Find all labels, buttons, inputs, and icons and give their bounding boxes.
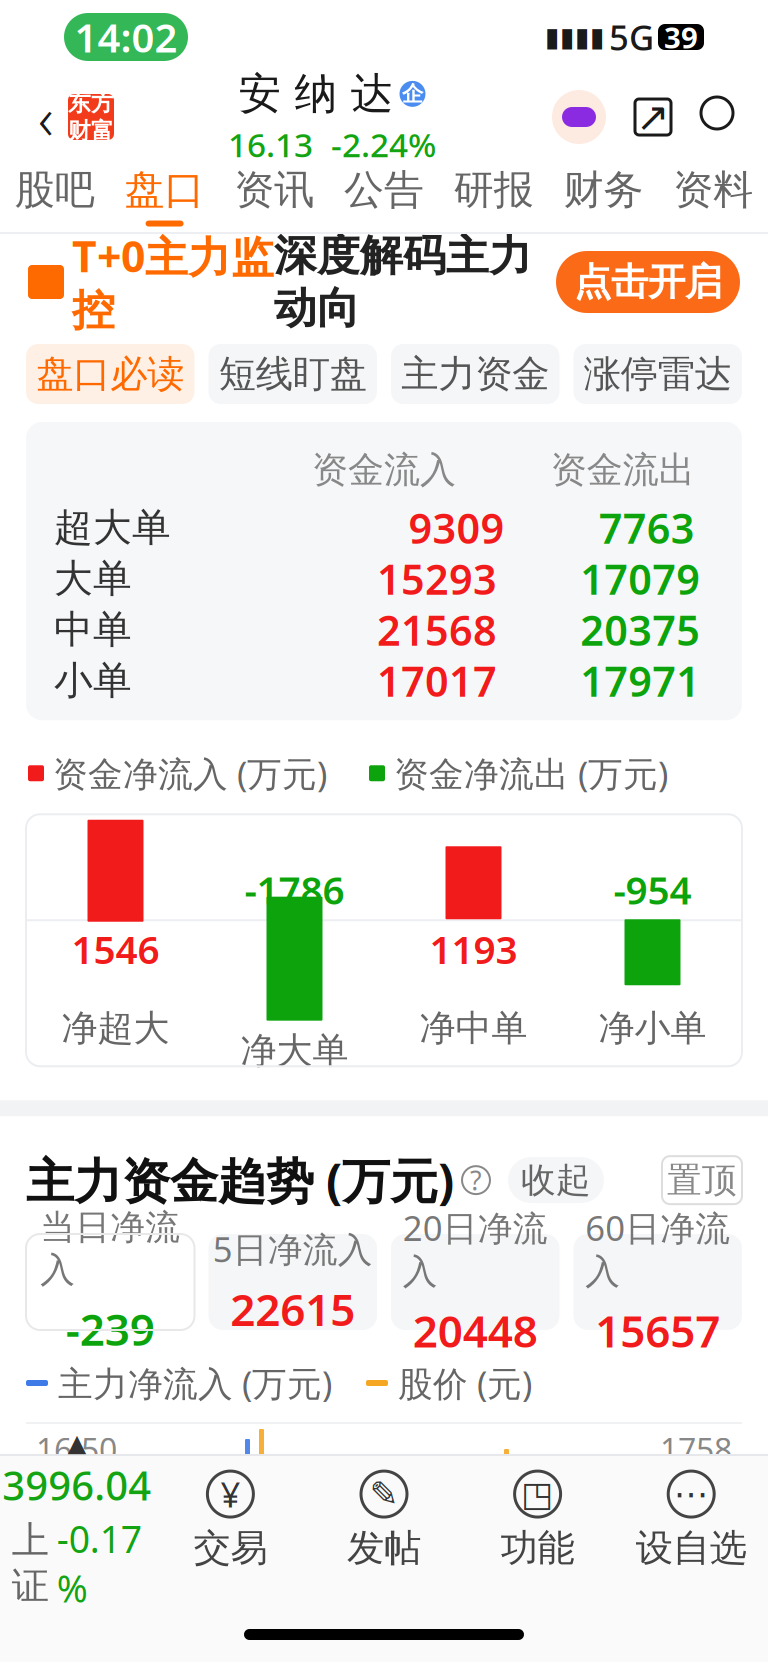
- staticText: ▲: [68, 1429, 86, 1456]
- staticText: 交易: [193, 1525, 267, 1571]
- staticText: 资讯: [234, 165, 314, 214]
- button[interactable]: ⋯: [614, 1471, 768, 1571]
- staticText: 小单: [54, 657, 132, 704]
- staticText: 资金流出: [551, 448, 695, 492]
- staticText: 收起: [521, 1159, 591, 1201]
- staticText: 17079: [580, 551, 700, 606]
- staticText: 东方: [68, 89, 114, 117]
- staticText: T+0主力监控: [72, 227, 274, 337]
- button[interactable]: 📈: [0, 234, 768, 330]
- staticText: 7763: [599, 500, 695, 555]
- staticText: ↗: [636, 94, 670, 140]
- button[interactable]: AI Assistant: [550, 88, 608, 146]
- button[interactable]: Back: [24, 87, 68, 147]
- staticText: 20448: [413, 1301, 538, 1359]
- staticText: 短线盯盘: [219, 351, 367, 397]
- staticText: 净超大: [61, 1006, 169, 1050]
- staticText: 净中单: [419, 1006, 527, 1050]
- staticText: 点击开启: [574, 259, 722, 305]
- staticText: 1758: [660, 1428, 732, 1470]
- staticText: 资金流入: [312, 448, 456, 492]
- staticText: 主力净流入 (万元): [58, 1360, 332, 1406]
- button[interactable]: 短线盯盘: [208, 344, 377, 404]
- staticText: 3996.04: [2, 1458, 151, 1512]
- button[interactable]: 资讯: [219, 160, 329, 232]
- staticText: ⋯: [674, 1474, 709, 1514]
- staticText: 17971: [580, 653, 700, 708]
- button[interactable]: ✎: [307, 1471, 461, 1571]
- staticText: 设自选: [636, 1525, 747, 1571]
- staticText: 14:02: [74, 10, 177, 63]
- button[interactable]: 5日净流入: [208, 1234, 377, 1330]
- staticText: 20375: [580, 602, 700, 657]
- staticText: 盘口必读: [36, 351, 184, 397]
- staticText: 资金净流入 (万元): [53, 750, 327, 796]
- staticText: -0.17%: [57, 1514, 142, 1613]
- staticText: 9309: [408, 500, 504, 555]
- button[interactable]: 当日净流入: [26, 1234, 194, 1330]
- button[interactable]: 财务: [549, 160, 658, 232]
- staticText: 1159: [660, 1483, 732, 1525]
- staticText: 16.13 -2.24%: [228, 122, 436, 166]
- staticText: 39: [664, 17, 698, 56]
- staticText: 15293: [377, 551, 497, 606]
- staticText: 财务: [563, 165, 643, 214]
- button[interactable]: 盘口必读: [26, 344, 194, 404]
- button[interactable]: East Money: [68, 94, 114, 140]
- staticText: 主力资金趋势 (万元): [26, 1148, 454, 1212]
- button[interactable]: Share: [630, 94, 676, 140]
- button[interactable]: 20日净流入: [391, 1234, 559, 1330]
- button[interactable]: ¥: [154, 1471, 307, 1571]
- staticText: 盘口: [125, 165, 205, 214]
- staticText: 涨停雷达: [584, 351, 732, 397]
- staticText: 净小单: [598, 1006, 706, 1050]
- staticText: 深度解码主力动向: [274, 230, 532, 334]
- staticText: 5日净流入: [213, 1226, 373, 1272]
- staticText: ‹: [38, 78, 54, 156]
- staticText: 资金净流出 (万元): [394, 750, 668, 796]
- staticText: 20日净流入: [403, 1204, 548, 1293]
- staticText: 15657: [595, 1301, 720, 1359]
- staticText: 上证: [12, 1517, 49, 1609]
- button[interactable]: ◳: [461, 1471, 614, 1571]
- button[interactable]: 主力资金: [391, 344, 559, 404]
- staticText: 16.50: [36, 1428, 117, 1470]
- button[interactable]: 股吧: [0, 160, 110, 232]
- staticText: 超大单: [54, 504, 171, 551]
- button[interactable]: 收起: [508, 1157, 604, 1203]
- staticText: 功能: [501, 1525, 575, 1571]
- staticText: 5G: [609, 14, 654, 60]
- staticText: 股吧: [15, 165, 95, 214]
- staticText: -1786: [244, 864, 344, 915]
- button[interactable]: 公告: [329, 160, 439, 232]
- button[interactable]: 资料: [658, 160, 768, 232]
- button[interactable]: 涨停雷达: [573, 344, 742, 404]
- staticText: -954: [613, 864, 691, 915]
- staticText: 21568: [377, 602, 497, 657]
- staticText: ¥: [220, 1471, 240, 1517]
- button[interactable]: 盘口: [110, 160, 219, 232]
- staticText: 17017: [377, 653, 497, 708]
- button[interactable]: ▲: [0, 1429, 154, 1613]
- staticText: 置顶: [667, 1159, 737, 1201]
- staticText: 1193: [429, 923, 517, 975]
- button[interactable]: 置顶: [662, 1156, 742, 1204]
- staticText: 股价 (元): [398, 1360, 532, 1406]
- button[interactable]: Search: [698, 94, 744, 140]
- staticText: ✎: [369, 1474, 398, 1514]
- staticText: 净大单: [240, 1029, 348, 1073]
- staticText: 大单: [54, 555, 132, 602]
- staticText: -239: [66, 1299, 155, 1358]
- staticText: 财富: [68, 117, 114, 145]
- staticText: 22615: [230, 1280, 355, 1338]
- staticText: 发帖: [347, 1525, 421, 1571]
- staticText: 560: [678, 1537, 732, 1580]
- staticText: 1546: [71, 923, 159, 975]
- staticText: ◳: [521, 1474, 554, 1514]
- staticText: 16.21: [36, 1483, 117, 1525]
- staticText: 中单: [54, 606, 132, 653]
- staticText: 60日净流入: [585, 1204, 730, 1293]
- button[interactable]: 60日净流入: [573, 1234, 742, 1330]
- button[interactable]: 研报: [439, 160, 549, 232]
- staticText: 公告: [344, 165, 424, 214]
